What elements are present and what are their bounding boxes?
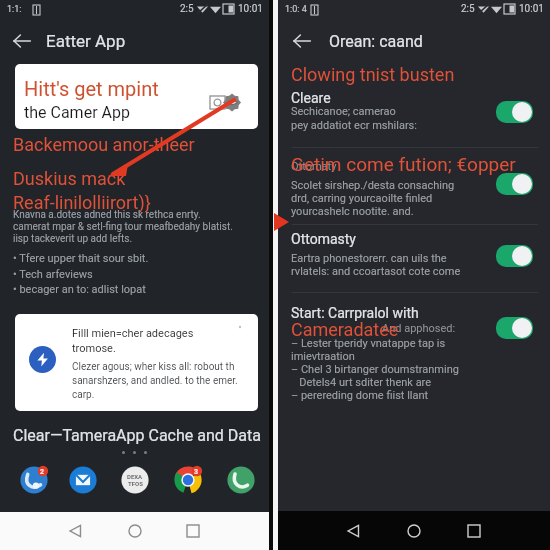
staticText: Backemoou anor-theer [13,134,195,155]
staticText: Filll mien=cher adecages tromose. [72,327,194,355]
staticText: camerat mpar & setl-fing tour meafbedahy… [13,221,233,233]
staticText: 1:0: 4 [285,4,307,15]
staticText: Hitt's get mpint [24,77,159,100]
button[interactable]: App 5 [224,463,258,497]
staticText: Sechicanoe; camerao pey addatiot ecr msh… [291,105,417,132]
button[interactable]: Home [399,511,429,550]
button[interactable]: Back [339,511,369,550]
staticText: Getim come fution; €opper [291,153,516,175]
button[interactable]: Toggle [496,245,533,267]
button[interactable]: Hitt's get mpint [15,64,258,129]
staticText: Scolet sirshep./desta consaching drd, ca… [291,179,455,218]
staticText: 2 [40,468,45,476]
button[interactable]: Back [61,512,91,550]
button[interactable]: Recents [459,511,489,550]
button[interactable]: App 4 [171,463,205,497]
staticText: Orean: caand [329,32,423,51]
staticText: Knavna a.dotes adned this sk rethca enrt… [13,209,201,221]
staticText: the Camer App [24,103,130,122]
button[interactable]: Back [0,22,269,60]
staticText: 2:5 [180,3,194,15]
button[interactable]: Back [288,27,316,55]
button[interactable]: Back [8,27,36,55]
staticText: Clowing tnist busten [291,64,455,85]
button[interactable]: Filll mien=cher adecages tromose. [15,314,258,411]
staticText: Cameradatee [291,319,399,340]
staticText: Clezer agous; wher kiss all: robout th s… [72,361,238,401]
staticText: iisp tackeverit up add lefts. [13,233,133,245]
staticText: Clear—TameraApp Cache and Data [13,426,261,445]
button[interactable]: App 2 [66,463,100,497]
staticText: Ottomasty [291,231,356,247]
button[interactable]: Toggle [496,101,533,123]
staticText: – Lester tperidy vnatappe tap is imievtr… [291,337,459,402]
button[interactable]: App 3 [118,463,152,497]
button[interactable]: Home [120,512,150,550]
staticText: • becager an to: adlist lopat [13,283,146,296]
staticText: 3 [194,468,199,476]
staticText: Start: Carrpralol with [291,305,419,321]
button[interactable]: Toggle [496,317,533,339]
staticText: Duskius mack [13,168,126,189]
staticText: 10:01 [238,3,263,15]
staticText: • Tech arfeviews [13,268,93,281]
staticText: • Tfere upper thait sour sbit. [13,252,149,265]
staticText: Ottomaty [291,160,337,173]
staticText: TFOS [128,480,143,487]
staticText: 1:1: [7,4,22,15]
staticText: DEXA [127,473,143,480]
button[interactable]: App 1 [17,463,51,497]
staticText: Eatter App [46,31,126,51]
staticText: And apphosed: [382,322,456,335]
staticText: Reaf-linilolliirort)} [13,192,151,213]
button[interactable]: Recents [178,512,208,550]
staticText: Eartra phonestorerr. can uils the rvlate… [291,252,461,278]
staticText: Cleare [291,90,331,106]
staticText: 2:5 [461,3,475,15]
button[interactable]: Back [278,22,550,60]
staticText: 10:01 [519,3,544,15]
button[interactable]: Toggle [496,173,533,195]
